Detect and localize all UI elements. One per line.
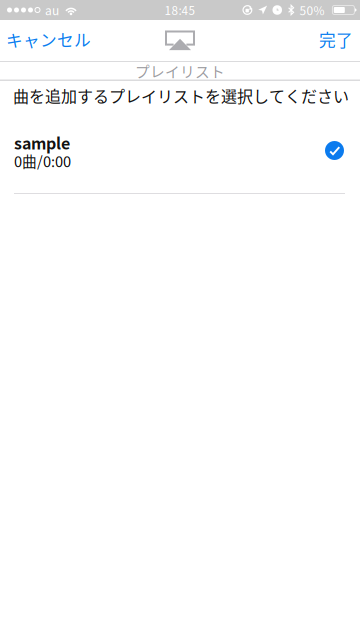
button[interactable]: 完了: [309, 21, 360, 59]
button[interactable]: sample: [0, 116, 360, 193]
staticText: 50%: [299, 1, 324, 19]
button[interactable]: AirPlay: [157, 20, 203, 61]
staticText: au: [45, 1, 59, 19]
staticText: キャンセル: [6, 27, 91, 51]
staticText: 完了: [319, 27, 353, 51]
button[interactable]: キャンセル: [0, 21, 101, 59]
staticText: 曲を追加するプレイリストを選択してください: [13, 84, 349, 107]
staticText: sample: [14, 131, 70, 154]
staticText: 18:45: [164, 1, 195, 18]
staticText: プレイリスト: [135, 60, 225, 81]
staticText: 0曲/0:00: [14, 150, 71, 171]
